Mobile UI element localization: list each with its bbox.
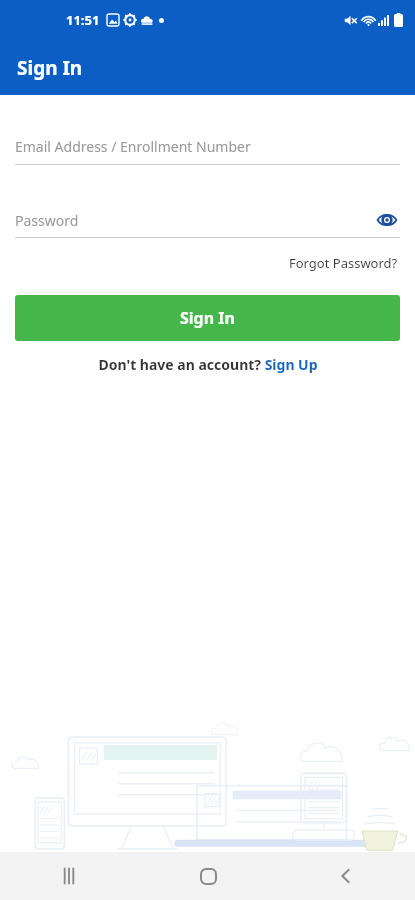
- staticText: Sign In: [17, 55, 83, 81]
- button[interactable]: Sign In: [15, 295, 400, 341]
- staticText: Sign In: [180, 307, 235, 329]
- button[interactable]: Password: [15, 207, 400, 238]
- staticText: Password: [15, 211, 374, 230]
- button[interactable]: Home: [178, 852, 238, 900]
- button[interactable]: Email Address / Enrollment Number: [15, 137, 400, 165]
- button[interactable]: Recent apps: [39, 852, 99, 900]
- staticText: Email Address / Enrollment Number: [15, 137, 251, 156]
- staticText: 11:51: [66, 11, 100, 29]
- button[interactable]: Show password: [374, 207, 400, 233]
- button[interactable]: Forgot Password?: [287, 252, 400, 274]
- button[interactable]: Don't have an account? Sign Up: [94, 353, 322, 376]
- button[interactable]: Back: [316, 852, 376, 900]
